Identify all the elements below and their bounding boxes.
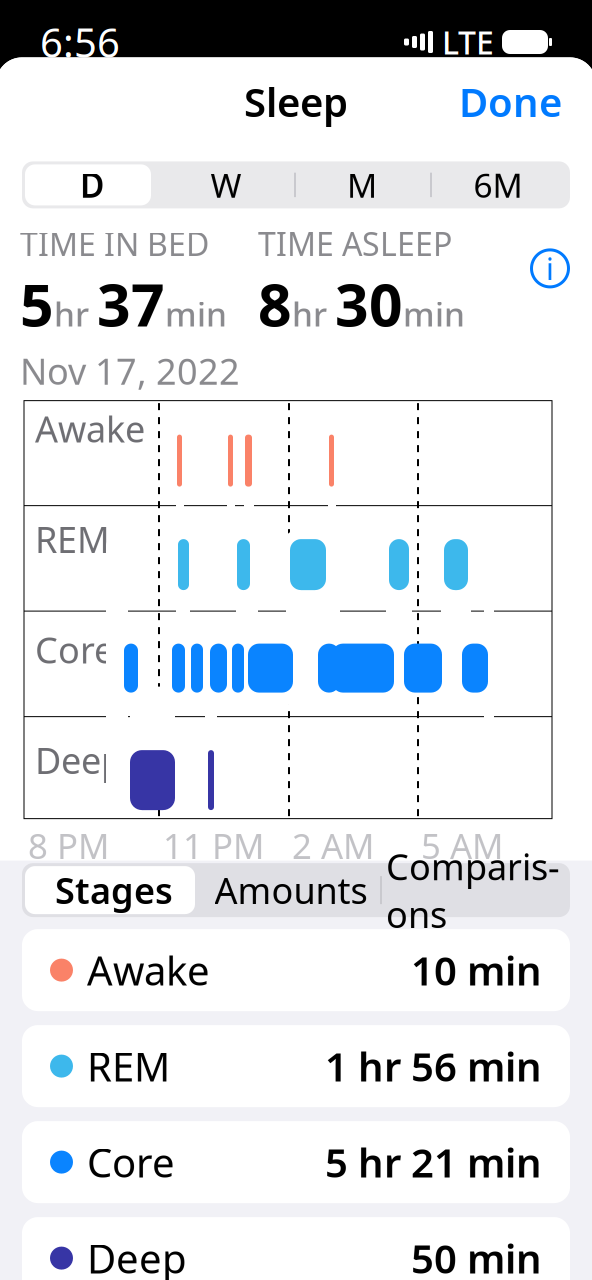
button[interactable]: Comparisons	[380, 863, 566, 917]
staticText: 6M	[473, 163, 522, 207]
staticText: REM	[87, 1039, 170, 1093]
staticText: TIME ASLEEP	[258, 222, 452, 265]
button[interactable]: Stages	[26, 863, 202, 917]
staticText: Amounts	[214, 866, 367, 914]
staticText: M	[347, 163, 377, 207]
button[interactable]: Amounts	[202, 863, 380, 917]
staticText: 10 min	[411, 943, 542, 997]
staticText: min	[403, 291, 465, 336]
staticText: Nov 17, 2022	[20, 347, 240, 395]
button[interactable]: 6M	[430, 161, 566, 208]
staticText: Core	[35, 626, 114, 673]
staticText: i	[546, 248, 554, 289]
button[interactable]: Awake	[22, 929, 570, 1011]
staticText: min	[165, 291, 227, 336]
staticText: Deep	[35, 736, 123, 784]
button[interactable]: Done	[451, 69, 570, 134]
staticText: W	[210, 163, 241, 207]
button[interactable]: About sleep data	[526, 244, 574, 292]
staticText: Done	[459, 75, 562, 128]
button[interactable]: W	[158, 161, 294, 208]
staticText: 8 PM	[28, 823, 109, 869]
staticText: Deep	[87, 1231, 187, 1280]
button[interactable]: D	[26, 161, 158, 208]
staticText: REM	[35, 515, 110, 563]
staticText: TIME IN BED	[20, 222, 209, 265]
button[interactable]: REM	[22, 1025, 570, 1107]
staticText: 30	[335, 265, 403, 343]
staticText: Stages	[55, 866, 173, 914]
staticText: 1 hr 56 min	[325, 1039, 542, 1093]
staticText: Core	[87, 1135, 175, 1189]
button[interactable]: Deep	[22, 1217, 570, 1280]
staticText: Awake	[87, 943, 210, 997]
staticText: LTE	[442, 21, 494, 63]
staticText: 5 AM	[421, 823, 503, 869]
staticText: 5 hr 21 min	[325, 1135, 542, 1189]
staticText: 6:56	[40, 15, 120, 68]
staticText: 5	[20, 265, 54, 343]
staticText: 2 AM	[292, 823, 374, 869]
staticText: hr	[292, 291, 327, 336]
staticText: 8	[258, 265, 292, 343]
staticText: D	[80, 163, 104, 207]
button[interactable]: M	[294, 161, 430, 208]
staticText: Sleep	[244, 75, 348, 128]
staticText: 50 min	[411, 1231, 542, 1280]
staticText: hr	[54, 291, 89, 336]
staticText: Awake	[35, 405, 145, 452]
button[interactable]: Core	[22, 1121, 570, 1203]
staticText: 11 PM	[163, 823, 264, 869]
staticText: 37	[97, 265, 165, 343]
staticText: Comparisons	[386, 842, 560, 938]
